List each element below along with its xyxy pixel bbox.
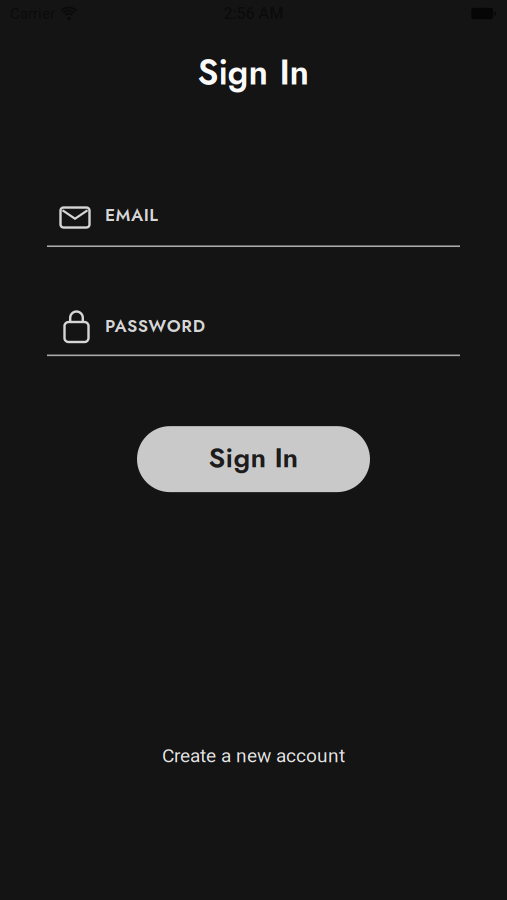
staticText: 2:56 AM (223, 4, 283, 23)
button[interactable]: Sign In (137, 426, 370, 492)
staticText: Sign In (208, 437, 298, 478)
staticText: Sign In (197, 47, 309, 98)
staticText: EMAIL (105, 203, 158, 227)
button[interactable]: Create a new account (162, 745, 345, 767)
staticText: PASSWORD (105, 314, 205, 338)
button[interactable]: EMAIL (0, 203, 507, 227)
button[interactable]: PASSWORD (0, 310, 507, 342)
staticText: Create a new account (162, 745, 345, 767)
